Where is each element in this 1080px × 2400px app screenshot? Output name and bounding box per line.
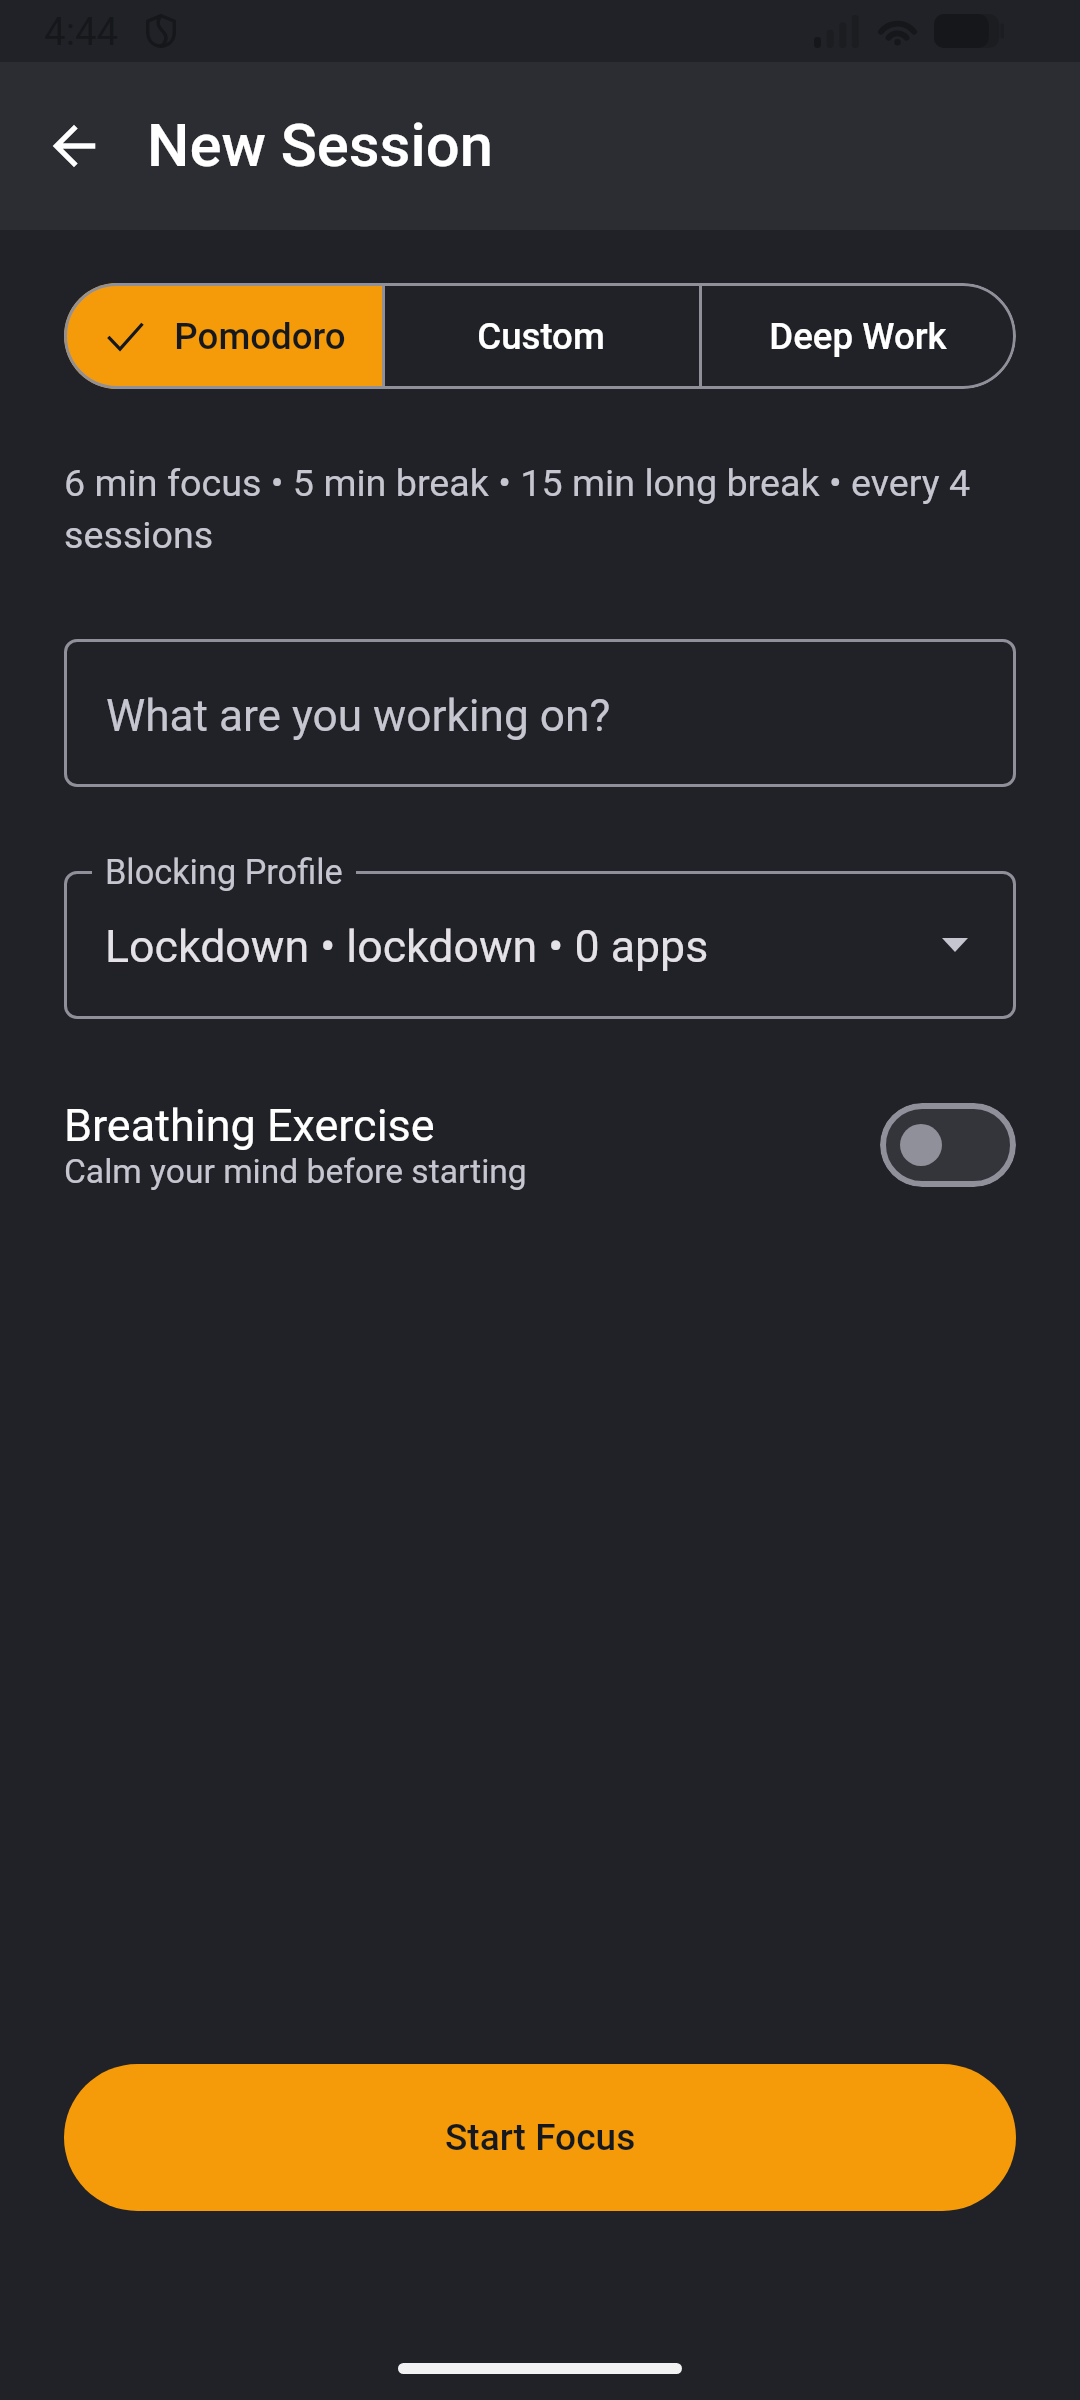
staticText: 6 min focus • 5 min break • 15 min long … [64, 461, 1016, 557]
button[interactable]: Back [26, 98, 122, 194]
staticText: Blocking Profile [105, 852, 343, 892]
button[interactable]: Custom [382, 283, 699, 389]
button[interactable]: Lockdown • lockdown • 0 apps [64, 871, 1016, 1019]
button[interactable]: Pomodoro [64, 283, 382, 389]
staticText: Start Focus [445, 2116, 636, 2159]
staticText: Lockdown • lockdown • 0 apps [105, 921, 709, 973]
staticText: What are you working on? [106, 690, 611, 742]
staticText: Deep Work [769, 315, 947, 358]
staticText: Custom [477, 315, 605, 358]
staticText: New Session [147, 111, 493, 181]
staticText: Calm your mind before starting [64, 1152, 527, 1191]
staticText: Breathing Exercise [64, 1099, 435, 1152]
staticText: 4:44 [44, 9, 119, 54]
staticText: Pomodoro [174, 315, 346, 358]
button[interactable]: Deep Work [699, 283, 1016, 389]
button[interactable]: Breathing Exercise [880, 1103, 1016, 1187]
button[interactable]: Start Focus [64, 2064, 1016, 2211]
button[interactable]: What are you working on? [64, 639, 1016, 787]
